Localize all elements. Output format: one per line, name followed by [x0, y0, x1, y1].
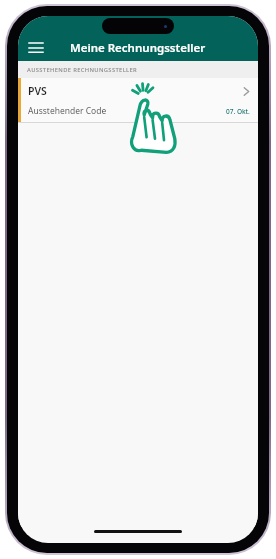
button[interactable]: Menü — [22, 35, 50, 61]
staticText: Ausstehender Code — [28, 105, 107, 117]
staticText: AUSSTEHENDE RECHNUNGSSTELLER — [27, 66, 138, 74]
button[interactable]: PVS — [18, 78, 258, 122]
staticText: Meine Rechnungssteller — [70, 40, 206, 56]
staticText: 07. Okt. — [226, 107, 250, 116]
staticText: PVS — [28, 84, 47, 98]
other: Tippen — [122, 84, 182, 156]
